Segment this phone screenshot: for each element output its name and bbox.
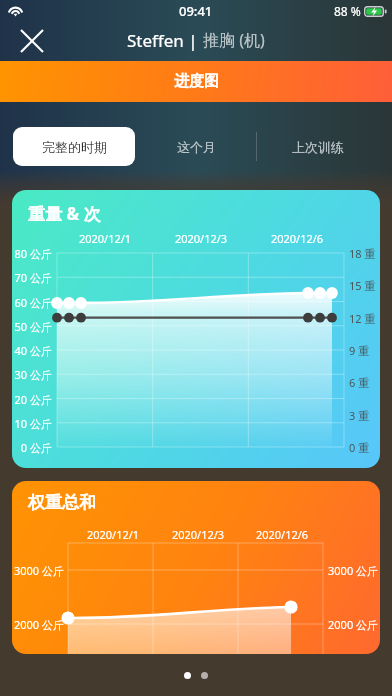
- staticText: 60 公斤: [12, 295, 52, 310]
- staticText: 0 重: [349, 440, 380, 455]
- staticText: 3 重: [349, 408, 380, 423]
- staticText: 0 公斤: [12, 440, 52, 455]
- staticText: 重量 & 次: [28, 202, 101, 225]
- staticText: 权重总和: [28, 492, 96, 513]
- staticText: 2020/12/3: [165, 231, 237, 246]
- staticText: 50 公斤: [12, 319, 52, 334]
- button[interactable]: Close: [9, 20, 55, 61]
- button[interactable]: 完整的时期: [13, 127, 135, 166]
- staticText: 3000 公斤: [12, 563, 64, 578]
- staticText: 6 重: [349, 375, 380, 390]
- staticText: 这个月: [177, 139, 216, 155]
- staticText: 进度图: [174, 72, 219, 91]
- staticText: 15 重: [349, 278, 380, 293]
- staticText: 3000 公斤: [328, 563, 380, 578]
- staticText: 30 公斤: [12, 367, 52, 382]
- button[interactable]: 权重总和: [12, 481, 380, 654]
- staticText: 70 公斤: [12, 270, 52, 285]
- staticText: 2020/12/6: [261, 231, 333, 246]
- staticText: 2020/12/1: [69, 231, 141, 246]
- staticText: 88 %: [334, 3, 361, 19]
- staticText: 40 公斤: [12, 343, 52, 358]
- staticText: 9 重: [349, 343, 380, 358]
- staticText: 09:41: [179, 2, 213, 20]
- staticText: 12 重: [349, 311, 380, 326]
- staticText: 2020/12/6: [246, 527, 318, 542]
- staticText: 2020/12/1: [77, 527, 149, 542]
- staticText: 上次训练: [292, 139, 344, 155]
- staticText: 2020/12/3: [162, 527, 234, 542]
- staticText: 推胸 (机): [203, 29, 265, 51]
- staticText: 18 重: [349, 246, 380, 261]
- staticText: Steffen |: [127, 29, 203, 52]
- staticText: 80 公斤: [12, 246, 52, 261]
- staticText: 2000 公斤: [12, 617, 64, 632]
- staticText: 2000 公斤: [328, 617, 380, 632]
- staticText: 20 公斤: [12, 392, 52, 407]
- staticText: 完整的时期: [42, 139, 107, 155]
- staticText: 10 公斤: [12, 416, 52, 431]
- button[interactable]: 重量 & 次: [12, 190, 380, 468]
- button[interactable]: 这个月: [135, 127, 257, 166]
- button[interactable]: 上次训练: [257, 127, 379, 166]
